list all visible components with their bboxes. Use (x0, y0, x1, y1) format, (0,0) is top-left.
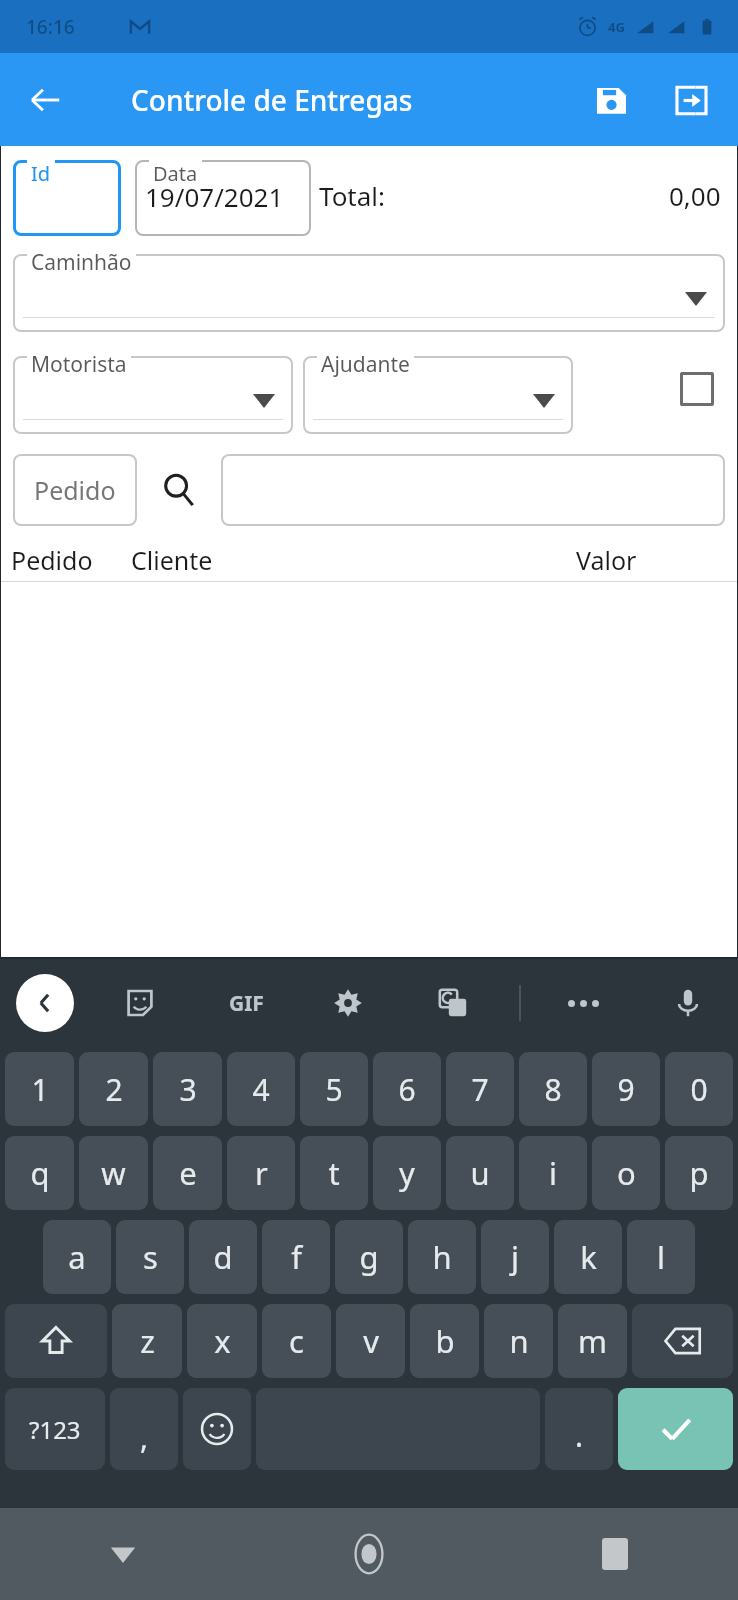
button[interactable]: f (262, 1220, 330, 1294)
button[interactable]: Voltar (14, 69, 76, 131)
button[interactable]: a (43, 1220, 111, 1294)
button[interactable]: Stickers (112, 975, 168, 1031)
staticText: 16:16 (26, 14, 75, 40)
button[interactable]: u (446, 1136, 514, 1210)
button[interactable]: q (5, 1136, 74, 1210)
button[interactable]: s (116, 1220, 184, 1294)
button[interactable]: o (592, 1136, 660, 1210)
staticText: w (101, 1152, 126, 1194)
button[interactable]: t (300, 1136, 368, 1210)
button[interactable]: v (336, 1304, 405, 1378)
button[interactable]: Configurações (320, 975, 376, 1031)
button[interactable]: Data (135, 154, 311, 236)
button[interactable]: c (262, 1304, 331, 1378)
staticText: Motorista (31, 350, 127, 379)
button[interactable]: Apps recentes (492, 1508, 738, 1600)
button[interactable]: n (484, 1304, 553, 1378)
staticText: p (689, 1152, 709, 1194)
button[interactable]: 9 (592, 1052, 660, 1126)
staticText: 9 (617, 1069, 635, 1110)
staticText: 7 (471, 1069, 489, 1110)
button[interactable]: Emoji (183, 1388, 251, 1470)
staticText: ?123 (29, 1413, 81, 1446)
button[interactable]: Símbolos (5, 1388, 105, 1470)
staticText: 0,00 (669, 178, 721, 213)
button[interactable] (221, 454, 725, 526)
staticText: c (289, 1320, 304, 1362)
staticText: Caminhão (31, 248, 132, 277)
staticText: b (435, 1320, 455, 1362)
button[interactable]: Ajudante (303, 344, 573, 434)
staticText: 0 (690, 1069, 708, 1110)
staticText: 19/07/2021 (145, 179, 284, 214)
staticText: r (255, 1152, 268, 1194)
button[interactable]: Id (13, 154, 121, 236)
button[interactable]: 2 (79, 1052, 148, 1126)
staticText: u (470, 1152, 490, 1194)
button[interactable]: Mais opções (555, 975, 611, 1031)
staticText: GIF (229, 989, 264, 1018)
button[interactable]: Sair (658, 67, 724, 133)
button[interactable]: Caminhão (13, 242, 725, 332)
button[interactable]: b (410, 1304, 479, 1378)
button[interactable]: 4 (227, 1052, 295, 1126)
button[interactable]: Início (246, 1508, 492, 1600)
staticText: Pedido (34, 473, 116, 507)
staticText: y (399, 1152, 415, 1194)
staticText: j (511, 1236, 519, 1278)
button[interactable]: g (335, 1220, 403, 1294)
button[interactable]: h (408, 1220, 476, 1294)
button[interactable]: Selecionar (669, 361, 725, 417)
button[interactable]: Vírgula (110, 1388, 178, 1470)
button[interactable]: 7 (446, 1052, 514, 1126)
button[interactable]: Fechar barra de ferramentas (16, 974, 74, 1032)
staticText: . (575, 1415, 584, 1456)
button[interactable]: Shift (5, 1304, 107, 1378)
button[interactable]: r (227, 1136, 295, 1210)
button[interactable]: Apagar (632, 1304, 733, 1378)
staticText: i (549, 1152, 557, 1194)
staticText: Data (153, 160, 198, 187)
staticText: 3 (179, 1069, 197, 1110)
button[interactable]: Tradutor (425, 975, 481, 1031)
staticText: Pedido (11, 543, 93, 577)
button[interactable]: d (189, 1220, 257, 1294)
staticText: x (214, 1320, 231, 1362)
button[interactable]: w (79, 1136, 148, 1210)
button[interactable]: 5 (300, 1052, 368, 1126)
button[interactable]: 6 (373, 1052, 441, 1126)
button[interactable]: m (558, 1304, 627, 1378)
button[interactable]: Pedido (13, 454, 137, 526)
button[interactable]: Salvar (578, 67, 644, 133)
button[interactable]: Confirmar (618, 1388, 733, 1470)
staticText: g (359, 1236, 379, 1278)
button[interactable]: Voltar (0, 1508, 246, 1600)
staticText: 1 (31, 1069, 49, 1110)
button[interactable]: 1 (5, 1052, 74, 1126)
button[interactable]: x (187, 1304, 257, 1378)
button[interactable]: Ponto (545, 1388, 613, 1470)
staticText: q (30, 1152, 50, 1194)
staticText: 8 (544, 1069, 562, 1110)
button[interactable]: 0 (665, 1052, 733, 1126)
staticText: o (617, 1152, 636, 1194)
button[interactable]: 3 (153, 1052, 222, 1126)
button[interactable]: i (519, 1136, 587, 1210)
button[interactable]: Ditado por voz (660, 975, 716, 1031)
button[interactable]: e (153, 1136, 222, 1210)
staticText: t (328, 1152, 340, 1194)
button[interactable]: j (481, 1220, 549, 1294)
button[interactable]: Pesquisar (137, 454, 221, 526)
button[interactable]: GIF (215, 972, 277, 1034)
button[interactable]: y (373, 1136, 441, 1210)
staticText: l (657, 1236, 665, 1278)
staticText: 6 (398, 1069, 416, 1110)
button[interactable]: Motorista (13, 344, 293, 434)
button[interactable]: p (665, 1136, 733, 1210)
staticText: Total: (319, 178, 386, 213)
button[interactable]: k (554, 1220, 622, 1294)
button[interactable]: l (627, 1220, 695, 1294)
button[interactable]: z (112, 1304, 182, 1378)
button[interactable]: 8 (519, 1052, 587, 1126)
